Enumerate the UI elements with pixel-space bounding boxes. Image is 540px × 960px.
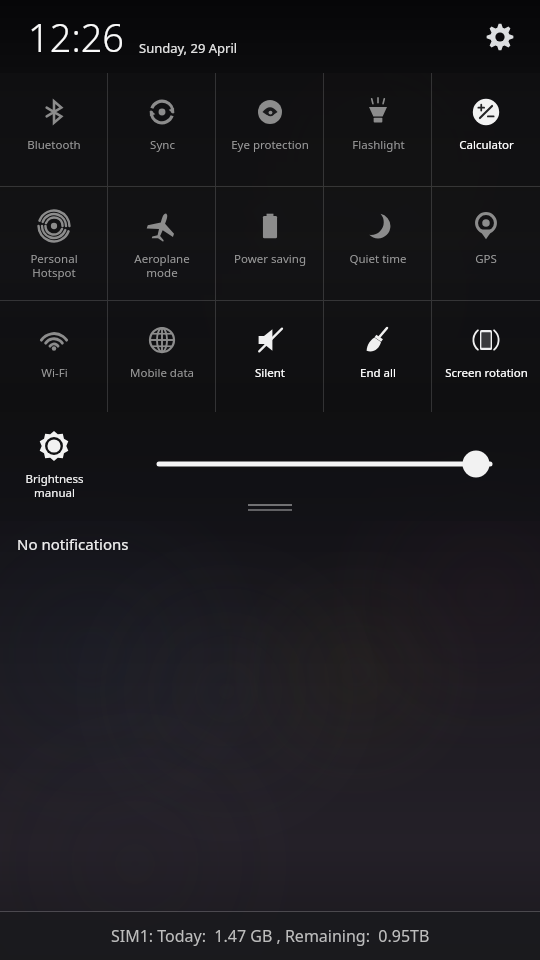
button[interactable]: Sync xyxy=(108,73,216,186)
button[interactable]: Power saving xyxy=(216,187,324,300)
staticText: Eye protection xyxy=(231,137,309,153)
staticText: Aeroplane mode xyxy=(134,251,190,280)
button[interactable]: Brightness slider xyxy=(0,412,540,521)
staticText: GPS xyxy=(475,251,497,267)
staticText: Quiet time xyxy=(349,251,407,267)
button[interactable]: SIM1: Today: 1.47 GB , Remaining: 0.95TB xyxy=(0,912,540,960)
staticText: End all xyxy=(360,365,396,381)
staticText: 12:26 xyxy=(28,11,125,63)
staticText: No notifications xyxy=(17,534,129,554)
staticText: Bluetooth xyxy=(27,137,81,153)
button[interactable]: End all xyxy=(324,301,432,412)
button[interactable]: Personal Hotspot xyxy=(0,187,108,300)
button[interactable]: Quiet time xyxy=(324,187,432,300)
button[interactable]: Brightness manual xyxy=(0,412,108,521)
staticText: Brightness manual xyxy=(25,471,84,500)
staticText: Wi-Fi xyxy=(41,365,68,381)
button[interactable]: Bluetooth xyxy=(0,73,108,186)
staticText: Sunday, 29 April xyxy=(139,39,238,57)
button[interactable]: Mobile data xyxy=(108,301,216,412)
staticText: Silent xyxy=(255,365,285,381)
button[interactable]: Calculator xyxy=(432,73,540,186)
staticText: Flashlight xyxy=(352,137,405,153)
button[interactable]: Settings xyxy=(474,11,526,63)
button[interactable]: Screen rotation xyxy=(432,301,540,412)
staticText: Mobile data xyxy=(130,365,194,381)
staticText: SIM1: Today: 1.47 GB , Remaining: 0.95TB xyxy=(111,925,430,947)
button[interactable]: Silent xyxy=(216,301,324,412)
staticText: Sync xyxy=(150,137,175,153)
staticText: Power saving xyxy=(234,251,306,267)
button[interactable]: GPS xyxy=(432,187,540,300)
button[interactable]: Wi-Fi xyxy=(0,301,108,412)
staticText: Screen rotation xyxy=(445,365,528,381)
staticText: Calculator xyxy=(459,137,514,153)
button[interactable]: Aeroplane mode xyxy=(108,187,216,300)
button[interactable]: Eye protection xyxy=(216,73,324,186)
button[interactable]: Flashlight xyxy=(324,73,432,186)
staticText: Personal Hotspot xyxy=(30,251,78,280)
